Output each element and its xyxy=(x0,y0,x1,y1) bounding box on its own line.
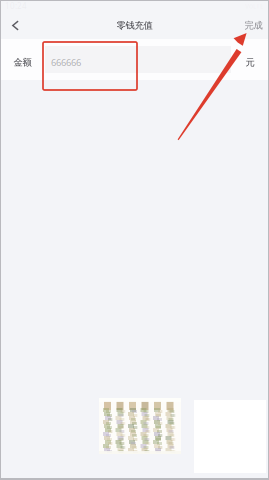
staticText: 零钱充值 xyxy=(116,20,152,31)
button[interactable]: 666666 xyxy=(45,46,231,73)
button[interactable]: Back xyxy=(0,12,31,39)
staticText: 完成 xyxy=(244,20,262,31)
staticText: 金额 xyxy=(13,57,31,68)
staticText: 666666 xyxy=(51,56,81,69)
button[interactable]: 完成 xyxy=(238,12,269,39)
staticText: 元 xyxy=(245,57,254,68)
